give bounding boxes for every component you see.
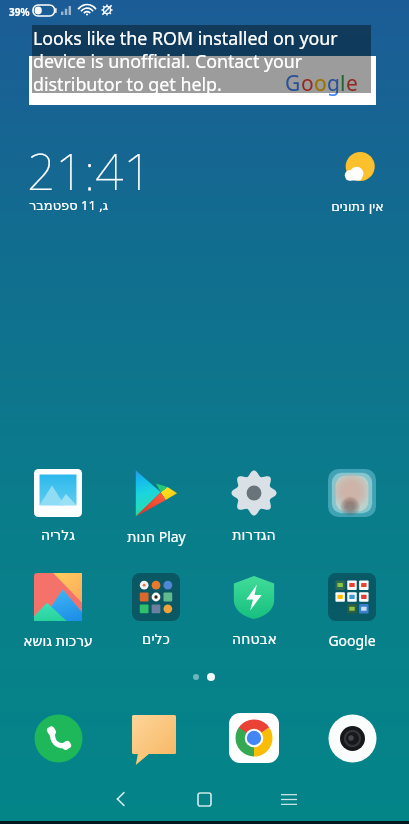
staticText: Google	[328, 631, 376, 650]
button[interactable]: חנות Play	[109, 469, 203, 546]
button[interactable]: Looks like the ROM installed on your dev…	[32, 25, 371, 93]
button[interactable]: הגדרות	[207, 469, 301, 543]
staticText: גלריה	[41, 527, 75, 543]
button[interactable]: Chrome	[224, 708, 284, 768]
button[interactable]: Camera	[322, 708, 382, 768]
staticText: o	[314, 69, 327, 98]
button[interactable]: Google	[305, 573, 399, 650]
staticText: 21:41	[27, 137, 152, 205]
staticText: אין נתונים	[331, 197, 384, 215]
staticText: הגדרות	[232, 527, 276, 543]
button[interactable]: Phone	[28, 708, 88, 768]
staticText: l	[340, 69, 346, 98]
button[interactable]: Home	[180, 774, 228, 822]
button[interactable]: גלריה	[11, 469, 105, 543]
staticText: חנות Play	[127, 527, 186, 546]
button[interactable]: 21:41	[24, 137, 154, 217]
button[interactable]: אבטחה	[207, 573, 301, 647]
staticText: Looks like the ROM installed on your dev…	[33, 26, 338, 93]
staticText: 39%	[9, 5, 30, 19]
button[interactable]: Messages	[126, 708, 186, 768]
button[interactable]: אין נתונים	[317, 148, 398, 215]
button[interactable]: G	[29, 56, 376, 105]
staticText: כלים	[142, 631, 170, 647]
button[interactable]: App	[305, 469, 399, 527]
button[interactable]: כלים	[109, 573, 203, 647]
staticText: g	[327, 69, 340, 98]
staticText: ערכות גושא	[23, 631, 93, 650]
staticText: אבטחה	[232, 631, 277, 647]
staticText: G	[285, 69, 301, 98]
staticText: ג, 11 ספטמבר	[29, 196, 109, 214]
button[interactable]: ערכות גושא	[11, 573, 105, 650]
button[interactable]: Back	[96, 774, 144, 822]
button[interactable]: Recents	[265, 774, 313, 822]
staticText: e	[346, 69, 358, 98]
staticText: o	[301, 69, 314, 98]
